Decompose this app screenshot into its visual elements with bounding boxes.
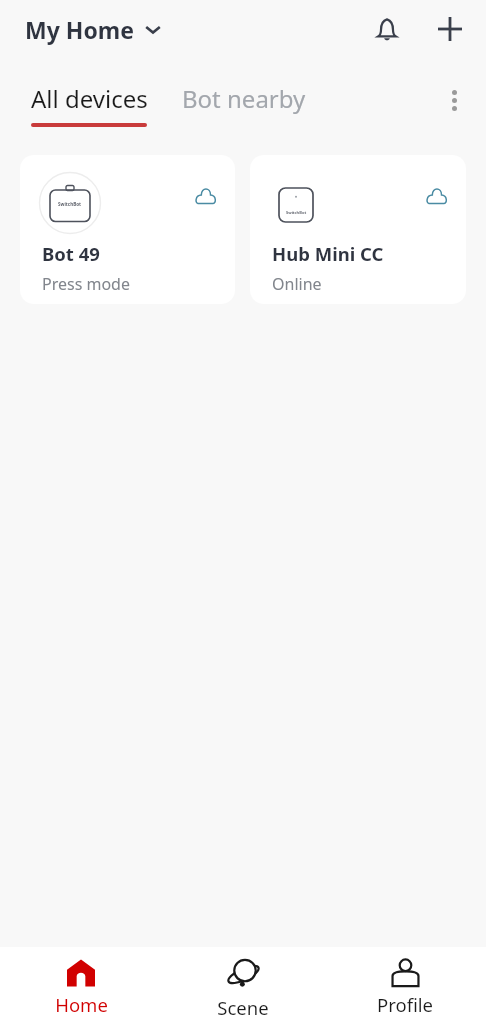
staticText: Bot nearby xyxy=(182,82,306,115)
staticText: Profile xyxy=(377,992,433,1017)
staticText: My Home xyxy=(25,14,134,45)
button[interactable]: Profile xyxy=(324,947,486,1023)
staticText: Scene xyxy=(217,995,269,1020)
button[interactable]: All devices xyxy=(21,58,158,125)
button[interactable]: Notifications xyxy=(361,5,409,53)
button[interactable]: SwitchBot xyxy=(250,155,466,304)
staticText: Home xyxy=(55,992,108,1017)
button[interactable]: Add device xyxy=(426,5,474,53)
staticText: SwitchBot xyxy=(286,210,307,215)
staticText: Press mode xyxy=(42,273,130,295)
button[interactable]: More options xyxy=(432,78,476,122)
staticText: Online xyxy=(272,273,322,295)
staticText: Bot 49 xyxy=(42,241,100,266)
button[interactable]: SwitchBot xyxy=(20,155,235,304)
staticText: Hub Mini CC xyxy=(272,241,384,266)
button[interactable]: Home xyxy=(0,947,162,1023)
button[interactable]: Bot nearby xyxy=(172,58,316,125)
button[interactable]: My Home xyxy=(25,0,163,58)
button[interactable]: Scene xyxy=(162,947,324,1023)
staticText: All devices xyxy=(31,82,148,115)
staticText: SwitchBot xyxy=(58,201,82,207)
